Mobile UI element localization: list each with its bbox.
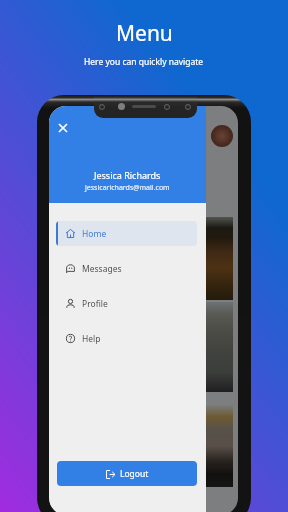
button[interactable]: Help — [56, 326, 197, 351]
staticText: jessicarichards@mail.com — [85, 183, 170, 193]
button[interactable]: Close menu — [52, 117, 74, 139]
staticText: Messages — [82, 263, 122, 275]
button[interactable]: Logout — [57, 461, 197, 486]
staticText: Here you can quickly navigate — [84, 56, 204, 68]
staticText: Help — [82, 333, 101, 345]
staticText: Home — [82, 228, 107, 240]
staticText: Logout — [120, 468, 149, 480]
button[interactable]: Messages — [56, 256, 197, 281]
button[interactable]: Profile — [56, 291, 197, 316]
button[interactable]: Home — [56, 221, 197, 246]
staticText: Profile — [82, 298, 108, 310]
staticText: Menu — [116, 19, 173, 48]
staticText: Jessica Richards — [94, 169, 161, 181]
